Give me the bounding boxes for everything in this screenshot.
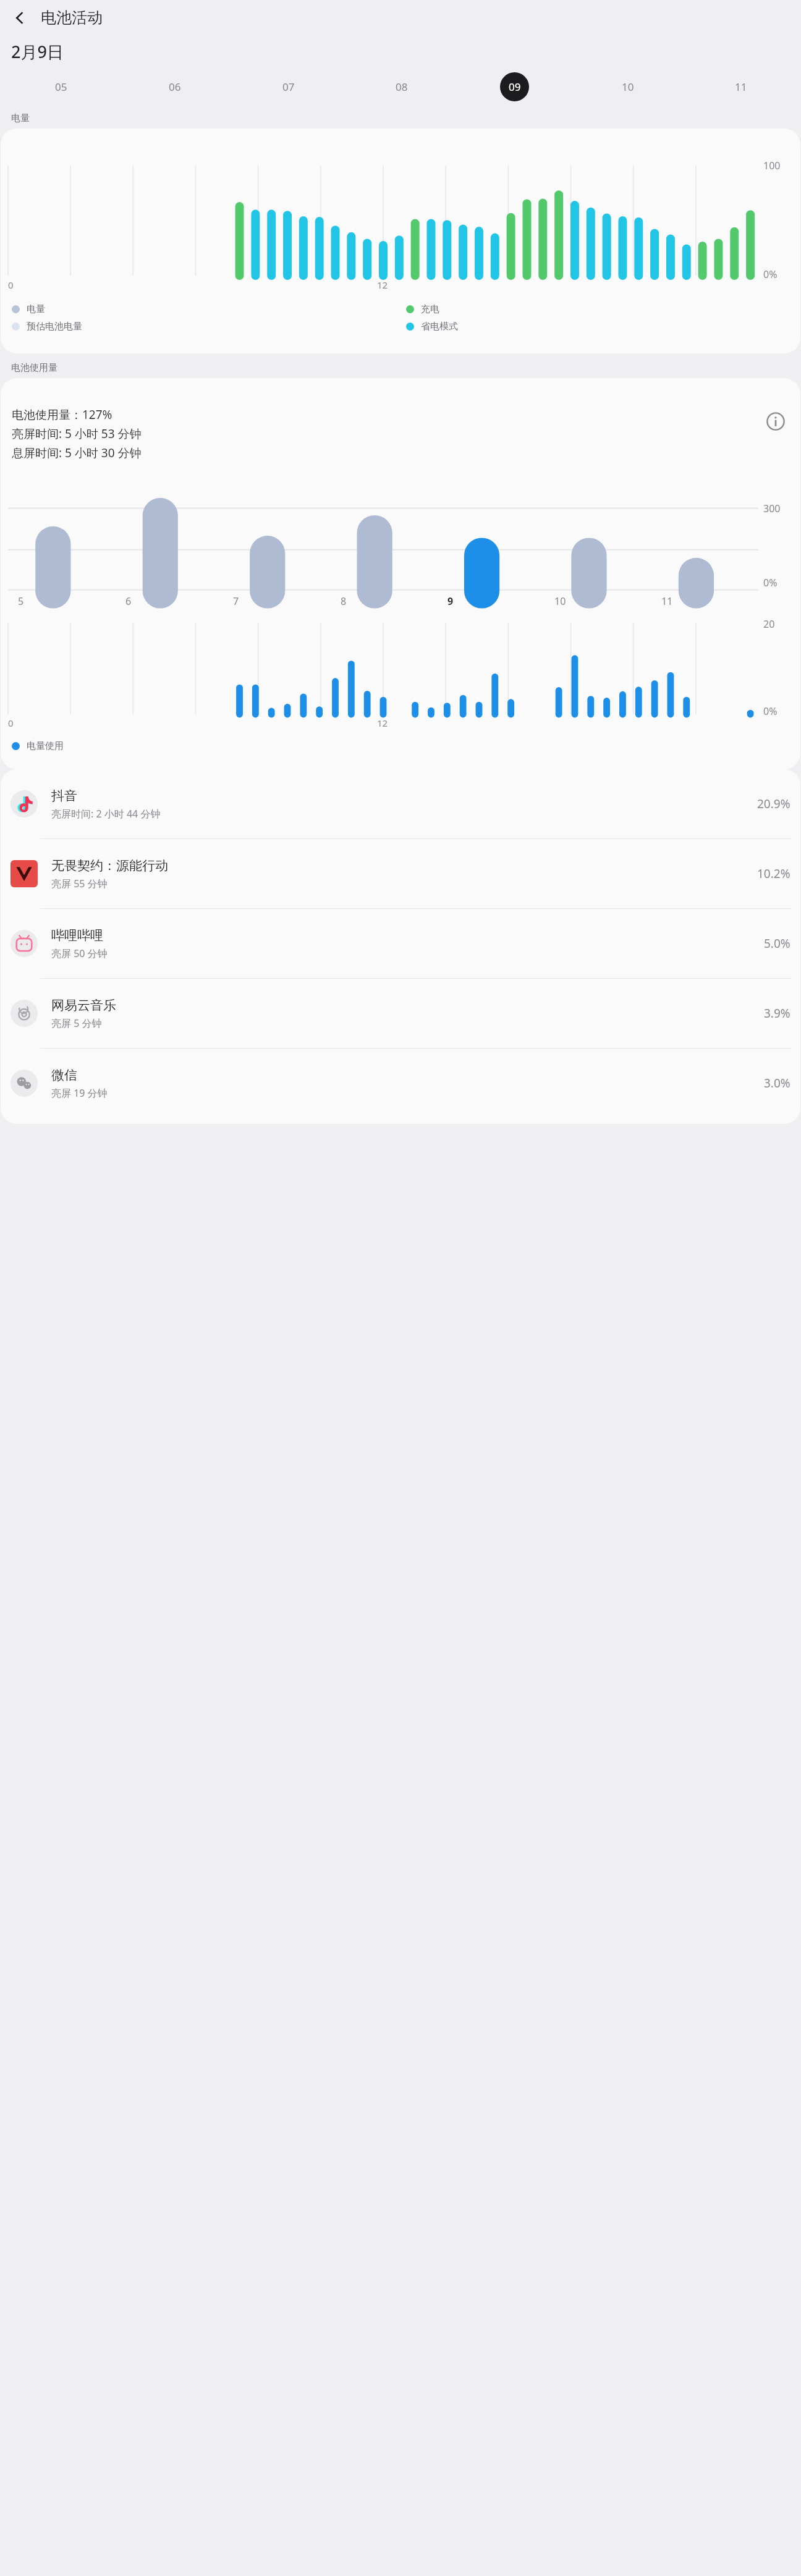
button[interactable]: 11: [684, 69, 797, 104]
staticText: 亮屏 19 分钟: [51, 1086, 108, 1100]
button[interactable]: 哔哩哔哩: [1, 909, 800, 978]
staticText: 11: [661, 594, 673, 608]
staticText: 07: [282, 80, 295, 94]
staticText: 网易云音乐: [51, 997, 116, 1013]
staticText: 0%: [763, 268, 778, 281]
staticText: 电池使用量：127%: [12, 407, 112, 423]
staticText: 05: [55, 80, 67, 94]
staticText: 12: [377, 279, 388, 291]
staticText: 9: [447, 594, 454, 608]
staticText: 充电: [421, 303, 439, 315]
button[interactable]: 无畏契约：源能行动: [1, 839, 800, 908]
button[interactable]: 信息: [761, 407, 790, 436]
staticText: 0: [8, 279, 14, 291]
staticText: 300: [763, 502, 781, 515]
staticText: 息屏时间: 5 小时 30 分钟: [12, 445, 142, 461]
button[interactable]: 抖音: [1, 769, 800, 838]
staticText: 哔哩哔哩: [51, 927, 103, 944]
staticText: 10: [622, 80, 634, 94]
staticText: 亮屏 50 分钟: [51, 947, 108, 960]
staticText: 7: [233, 594, 239, 608]
staticText: 电池活动: [41, 8, 103, 27]
staticText: 电量: [11, 112, 30, 124]
staticText: 09: [509, 80, 521, 94]
staticText: 0%: [763, 704, 778, 718]
button[interactable]: 07: [231, 69, 345, 104]
button[interactable]: 08: [345, 69, 458, 104]
staticText: 0: [8, 717, 14, 729]
staticText: 3.0%: [764, 1075, 790, 1091]
staticText: 亮屏时间: 5 小时 53 分钟: [12, 426, 142, 442]
staticText: 亮屏时间: 2 小时 44 分钟: [51, 807, 161, 821]
button[interactable]: 网易云音乐: [1, 979, 800, 1048]
staticText: 0%: [763, 576, 778, 589]
staticText: 100: [763, 159, 781, 172]
button[interactable]: 10: [571, 69, 684, 104]
button[interactable]: 05: [4, 69, 117, 104]
staticText: 亮屏 5 分钟: [51, 1016, 102, 1030]
staticText: 10.2%: [757, 866, 790, 882]
staticText: 08: [396, 80, 408, 94]
staticText: 20.9%: [757, 796, 790, 812]
staticText: 亮屏 55 分钟: [51, 877, 108, 890]
staticText: 8: [341, 594, 347, 608]
staticText: 电量: [27, 303, 45, 315]
staticText: 2月9日: [11, 40, 64, 63]
staticText: 预估电池电量: [27, 321, 82, 332]
staticText: 6: [125, 594, 132, 608]
staticText: 无畏契约：源能行动: [51, 858, 168, 874]
staticText: 06: [169, 80, 181, 94]
staticText: 微信: [51, 1067, 77, 1083]
staticText: 抖音: [51, 788, 77, 804]
staticText: 电量使用: [27, 740, 64, 752]
staticText: 10: [554, 594, 566, 608]
staticText: 3.9%: [764, 1005, 790, 1021]
staticText: 20: [763, 617, 775, 631]
staticText: 省电模式: [421, 321, 458, 332]
button[interactable]: 微信: [1, 1049, 800, 1118]
staticText: 12: [377, 717, 388, 729]
staticText: 5.0%: [764, 935, 790, 952]
staticText: 5: [18, 594, 24, 608]
button[interactable]: 06: [117, 69, 231, 104]
staticText: 电池使用量: [11, 362, 57, 374]
button[interactable]: 09: [458, 69, 571, 104]
button[interactable]: 返回: [5, 3, 35, 33]
staticText: 11: [735, 80, 747, 94]
